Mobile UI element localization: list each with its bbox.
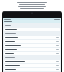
button[interactable] bbox=[4, 44, 60, 47]
button[interactable] bbox=[4, 36, 60, 39]
button[interactable] bbox=[4, 52, 60, 55]
other: Phone preview bbox=[2, 11, 62, 72]
button[interactable] bbox=[4, 64, 60, 67]
button[interactable] bbox=[3, 20, 61, 23]
button[interactable] bbox=[4, 28, 60, 31]
button[interactable] bbox=[4, 68, 60, 71]
button[interactable] bbox=[4, 60, 60, 63]
button[interactable] bbox=[4, 40, 60, 43]
button[interactable] bbox=[4, 48, 60, 51]
